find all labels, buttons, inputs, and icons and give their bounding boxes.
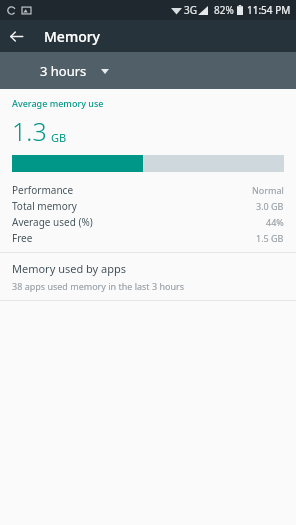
staticText: 38 apps used memory in the last 3 hours [12,280,185,292]
button[interactable]: Performance [12,182,284,198]
staticText: 1.3 [12,114,47,148]
staticText: GB [51,130,67,145]
staticText: 3 hours [40,62,87,80]
staticText: Free [12,231,33,245]
button[interactable]: Average used (%) [12,214,284,230]
staticText: Normal [252,184,284,196]
staticText: Total memory [12,199,77,213]
staticText: 44% [266,216,284,228]
staticText: 3.0 GB [256,200,284,212]
staticText: 3G [184,3,197,17]
staticText: 82% [214,3,234,17]
button[interactable]: Total memory [12,198,284,214]
staticText: 11:54 PM [247,3,291,17]
staticText: 1.5 GB [256,232,284,244]
button[interactable]: Free [12,230,284,246]
staticText: Average used (%) [12,215,93,229]
button[interactable]: Back [0,20,32,52]
staticText: Memory used by apps [12,261,127,276]
button[interactable]: Memory used by apps [0,253,296,300]
button[interactable]: 3 hours [36,56,113,86]
staticText: Average memory use [12,97,104,109]
staticText: Performance [12,183,74,197]
staticText: Memory [44,27,101,46]
